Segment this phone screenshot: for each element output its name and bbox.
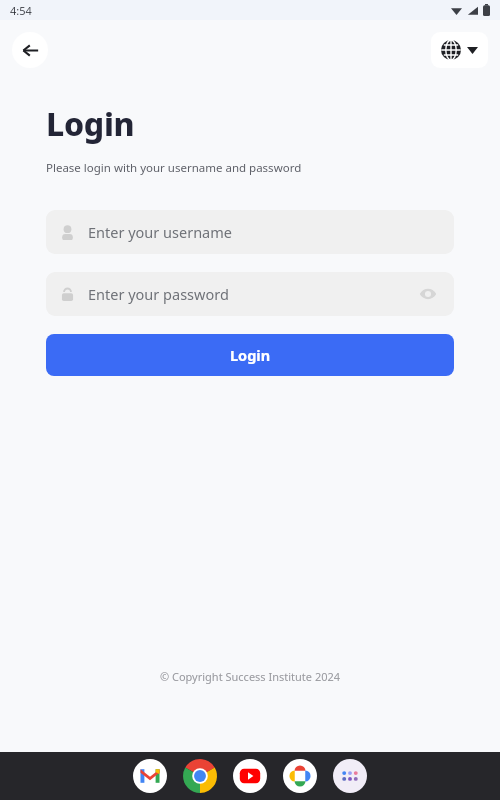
staticText: Login <box>230 345 271 365</box>
staticText: Enter your username <box>88 222 440 242</box>
button[interactable]: Enter your username <box>46 210 454 254</box>
button[interactable]: Select language <box>431 32 488 68</box>
staticText: Enter your password <box>88 284 416 304</box>
staticText: 4:54 <box>10 3 32 18</box>
button[interactable]: Chrome <box>183 759 217 793</box>
button[interactable]: Back <box>12 32 48 68</box>
button[interactable]: Enter your password <box>46 272 454 316</box>
button[interactable]: Photos <box>283 759 317 793</box>
button[interactable]: YouTube <box>233 759 267 793</box>
button[interactable]: Gmail <box>133 759 167 793</box>
button[interactable]: All apps <box>333 759 367 793</box>
staticText: © Copyright Success Institute 2024 <box>0 669 500 684</box>
button[interactable]: Show password <box>416 282 440 306</box>
staticText: Please login with your username and pass… <box>46 160 302 176</box>
staticText: Login <box>46 102 135 146</box>
button[interactable]: Login <box>46 334 454 376</box>
